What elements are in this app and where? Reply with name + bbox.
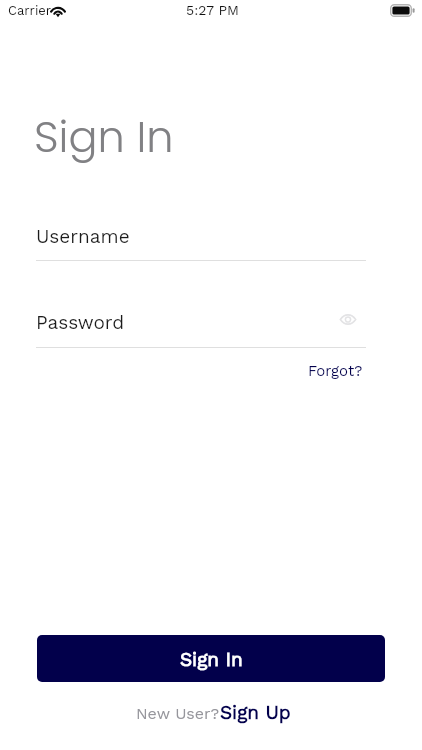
staticText: 5:27 PM: [186, 2, 239, 18]
staticText: Sign Up: [220, 701, 291, 723]
button[interactable]: Password: [35, 305, 366, 347]
staticText: Password: [36, 311, 125, 333]
staticText: Username: [36, 225, 130, 247]
staticText: Forgot?: [308, 362, 363, 380]
button[interactable]: Show password: [334, 305, 362, 333]
staticText: Sign In: [180, 648, 243, 670]
staticText: New User?: [136, 704, 220, 723]
button[interactable]: Username: [35, 219, 366, 261]
staticText: Sign In: [34, 107, 174, 167]
button[interactable]: Sign In: [37, 635, 385, 682]
button[interactable]: Forgot?: [303, 358, 358, 376]
staticText: Carrier: [8, 3, 52, 18]
button[interactable]: Sign Up: [220, 701, 291, 723]
